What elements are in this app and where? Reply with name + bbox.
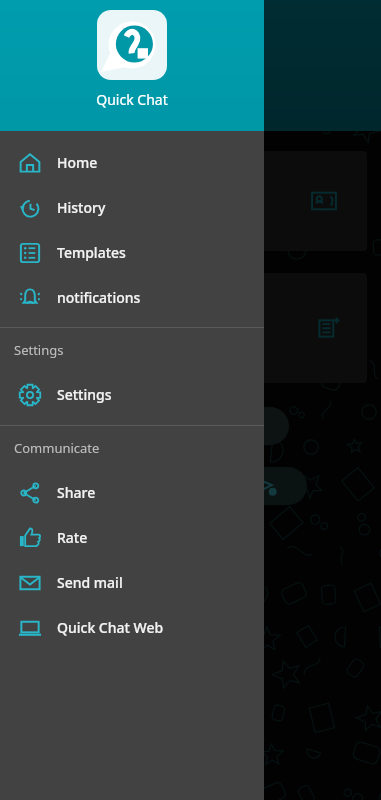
staticText: Settings xyxy=(57,385,112,404)
button[interactable]: Rate xyxy=(0,515,264,560)
staticText: Templates xyxy=(57,243,126,262)
staticText: Home xyxy=(57,153,98,172)
staticText: notifications xyxy=(57,288,141,307)
button[interactable] xyxy=(14,151,367,251)
button[interactable] xyxy=(227,467,307,505)
staticText: Settings xyxy=(14,341,64,359)
button[interactable]: Share xyxy=(0,470,264,515)
staticText: Communicate xyxy=(14,439,100,457)
staticText: History xyxy=(57,198,106,217)
button[interactable]: History xyxy=(0,185,264,230)
button[interactable]: notifications xyxy=(0,275,264,320)
staticText: Rate xyxy=(57,528,88,547)
button[interactable] xyxy=(14,273,367,383)
button[interactable]: Send mail xyxy=(0,560,264,605)
button[interactable]: Quick Chat Web xyxy=(0,605,264,650)
button[interactable]: Home xyxy=(0,140,264,185)
staticText: Quick Chat Web xyxy=(57,618,164,637)
button[interactable] xyxy=(215,407,289,445)
staticText: Quick Chat xyxy=(96,90,168,109)
button[interactable]: Settings xyxy=(0,372,264,417)
staticText: Share xyxy=(57,483,96,502)
button[interactable]: Templates xyxy=(0,230,264,275)
staticText: Send mail xyxy=(57,573,123,592)
